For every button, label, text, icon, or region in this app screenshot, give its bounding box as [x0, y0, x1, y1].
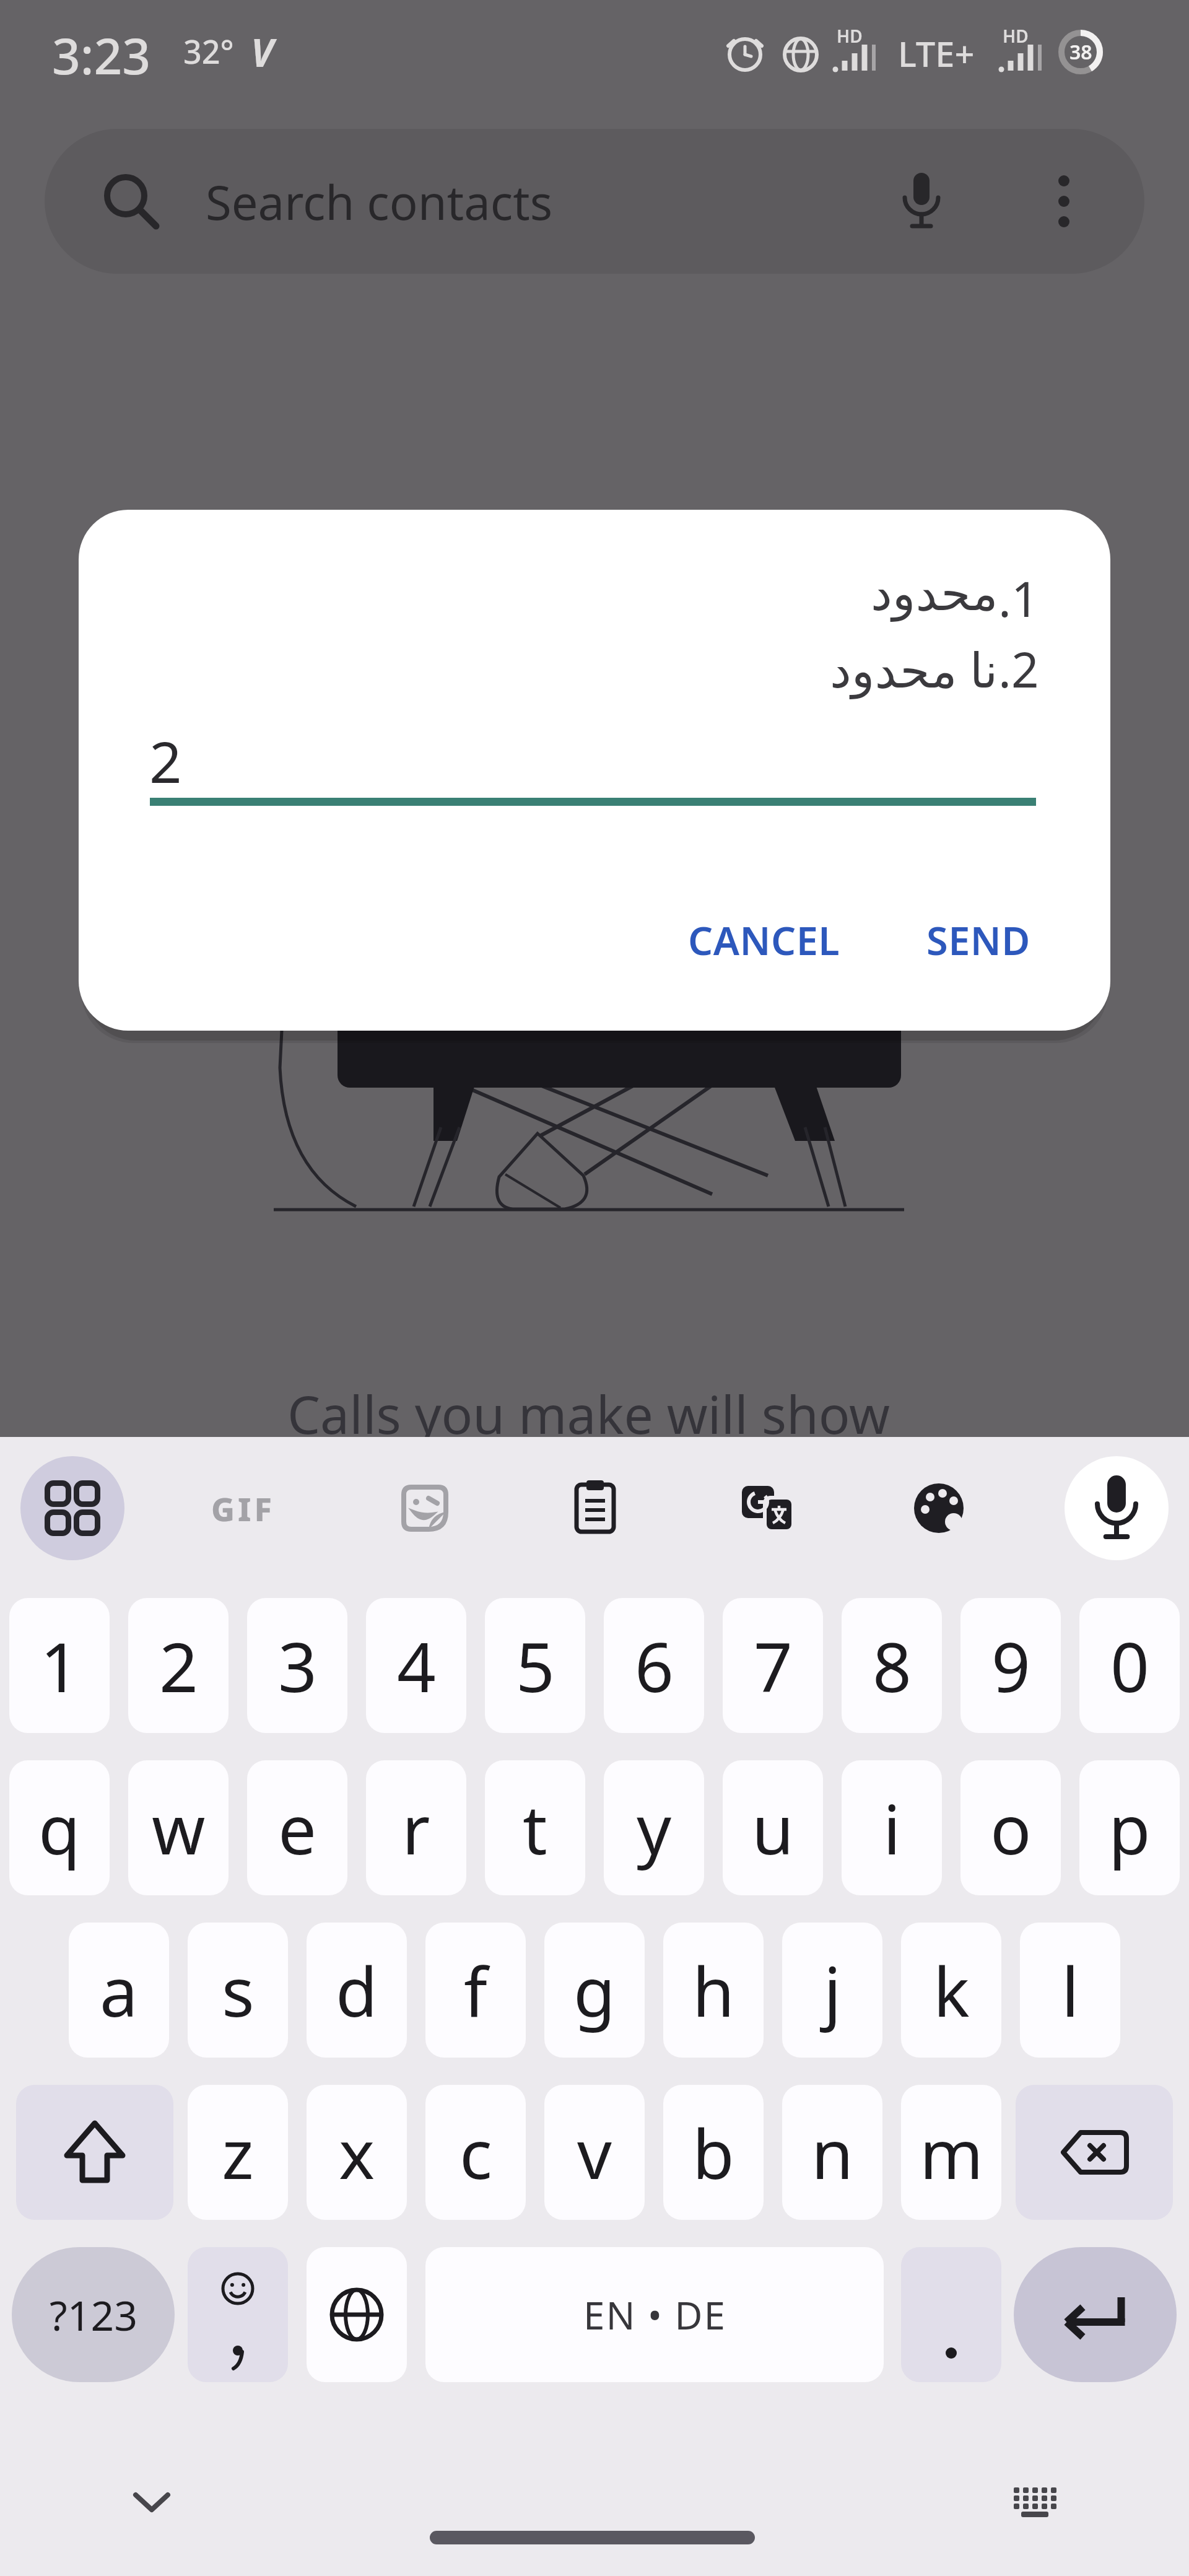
staticText: v [577, 2106, 612, 2199]
staticText: k [933, 1944, 970, 2037]
staticText: LTE+ [898, 30, 975, 77]
staticText: g [573, 1944, 616, 2037]
staticText: y [637, 1781, 672, 1874]
staticText: 2 [159, 1619, 198, 1712]
staticText: HD [837, 24, 863, 48]
staticText: محدود [871, 565, 998, 622]
staticText: 38 [1069, 38, 1092, 66]
staticText: w [152, 1781, 206, 1874]
staticText: i [883, 1781, 901, 1874]
staticText: p [1108, 1781, 1151, 1874]
staticText: 3 [278, 1619, 317, 1712]
staticText: CANCEL [688, 914, 840, 967]
staticText: .1 [998, 565, 1039, 631]
staticText: GIF [211, 1487, 275, 1530]
staticText: EN • DE [583, 2289, 726, 2341]
staticText: .2 [998, 636, 1039, 702]
staticText: r [402, 1781, 430, 1874]
staticText: Calls you make will show [287, 1378, 890, 1449]
staticText: s [222, 1944, 255, 2037]
staticText: Search contacts [206, 170, 553, 234]
staticText: b [692, 2106, 734, 2199]
staticText: نا محدود [830, 636, 998, 702]
staticText: 9 [991, 1619, 1030, 1712]
staticText: 7 [754, 1619, 793, 1712]
staticText: HD [1003, 24, 1029, 48]
staticText: d [336, 1944, 378, 2037]
staticText: 2 [149, 722, 182, 800]
staticText: SEND [926, 914, 1030, 967]
staticText: V [251, 26, 274, 78]
staticText: u [752, 1781, 794, 1874]
staticText: 32° [183, 29, 234, 73]
staticText: c [459, 2106, 492, 2199]
staticText: q [38, 1781, 81, 1874]
staticText: f [464, 1944, 487, 2037]
staticText: 4 [397, 1619, 436, 1712]
staticText: ?123 [50, 2287, 137, 2342]
staticText: 1 [40, 1619, 79, 1712]
staticText: m [920, 2106, 983, 2199]
staticText: 5 [516, 1619, 555, 1712]
staticText: 6 [635, 1619, 674, 1712]
staticText: 0 [1110, 1619, 1149, 1712]
staticText: l [1061, 1944, 1079, 2037]
staticText: n [811, 2106, 853, 2199]
staticText: e [278, 1781, 317, 1874]
staticText: h [692, 1944, 734, 2037]
staticText: 3:23 [52, 21, 151, 89]
staticText: j [824, 1944, 842, 2037]
staticText: z [222, 2106, 254, 2199]
staticText: x [339, 2106, 375, 2199]
staticText: t [523, 1781, 547, 1874]
staticText: 8 [873, 1619, 912, 1712]
staticText: o [990, 1781, 1032, 1874]
staticText: a [100, 1944, 138, 2037]
